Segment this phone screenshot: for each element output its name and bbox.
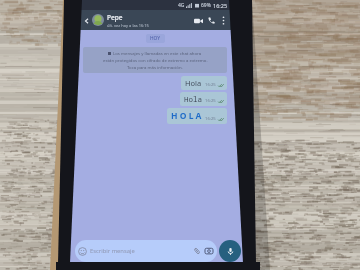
button[interactable]: Video call [192,14,205,27]
staticText: están protegidos con cifrado de extremo … [103,57,208,63]
staticText: Los mensajes y llamadas en este chat aho… [113,50,202,56]
staticText: HOY [150,35,161,42]
button[interactable]: Back [81,15,92,26]
button[interactable]: H O L A [167,108,227,124]
button[interactable]: Hola [181,76,227,90]
staticText: Toca para más información. [127,64,183,70]
button[interactable]: Call [205,14,218,27]
staticText: 16:25 [205,98,216,104]
staticText: H O L A [171,110,202,122]
staticText: Escribir mensaje [90,247,135,255]
staticText: 16:25 [205,82,216,88]
button[interactable]: Record voice message [219,240,241,262]
button[interactable]: Hola [180,92,227,106]
staticText: 4G [178,2,185,9]
staticText: 69% [201,2,211,9]
staticText: Hola [184,94,202,104]
button[interactable]: More options [218,15,229,26]
staticText: Pepe [107,13,123,22]
button[interactable]: Los mensajes y llamadas en este chat aho… [83,47,227,73]
staticText: 16:25 [205,116,216,122]
staticText: Hola [185,78,202,88]
button[interactable]: Escribir mensaje [75,240,217,262]
staticText: últ. vez hoy a las 16:15 [107,23,149,28]
staticText: 16:25 [213,2,228,9]
